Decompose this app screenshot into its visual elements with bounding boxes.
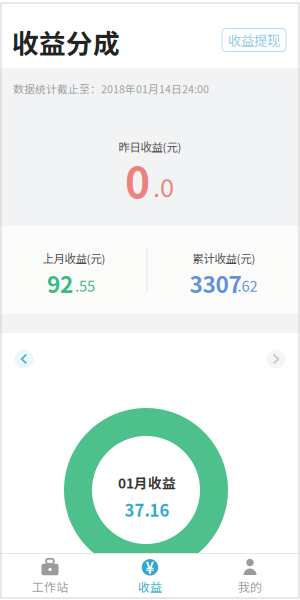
staticText: 累计收益(元): [192, 250, 255, 266]
staticText: 工作站: [32, 578, 68, 595]
staticText: 收益: [138, 578, 162, 595]
staticText: 数据统计截止至：2018年01月14日24:00: [13, 81, 209, 96]
staticText: 92: [47, 267, 73, 300]
staticText: 3307: [189, 267, 241, 300]
button[interactable]: 上一月: [10, 348, 38, 370]
staticText: .0: [153, 168, 174, 205]
staticText: 昨日收益(元): [118, 138, 181, 155]
staticText: ¥: [145, 557, 154, 578]
staticText: 收益提现: [228, 30, 280, 50]
button[interactable]: 工作站: [0, 554, 100, 600]
staticText: 01月收益: [118, 472, 176, 492]
staticText: 0: [125, 149, 150, 211]
button[interactable]: 下一月: [262, 348, 290, 370]
staticText: 37.16: [124, 497, 169, 521]
button[interactable]: ¥: [100, 554, 200, 600]
staticText: 我的: [238, 578, 262, 595]
button[interactable]: 我的: [200, 554, 300, 600]
staticText: 上月收益(元): [42, 250, 105, 266]
staticText: .62: [237, 275, 257, 296]
staticText: .55: [75, 275, 95, 296]
staticText: 收益分成: [12, 23, 120, 61]
button[interactable]: 收益提现: [222, 28, 286, 51]
